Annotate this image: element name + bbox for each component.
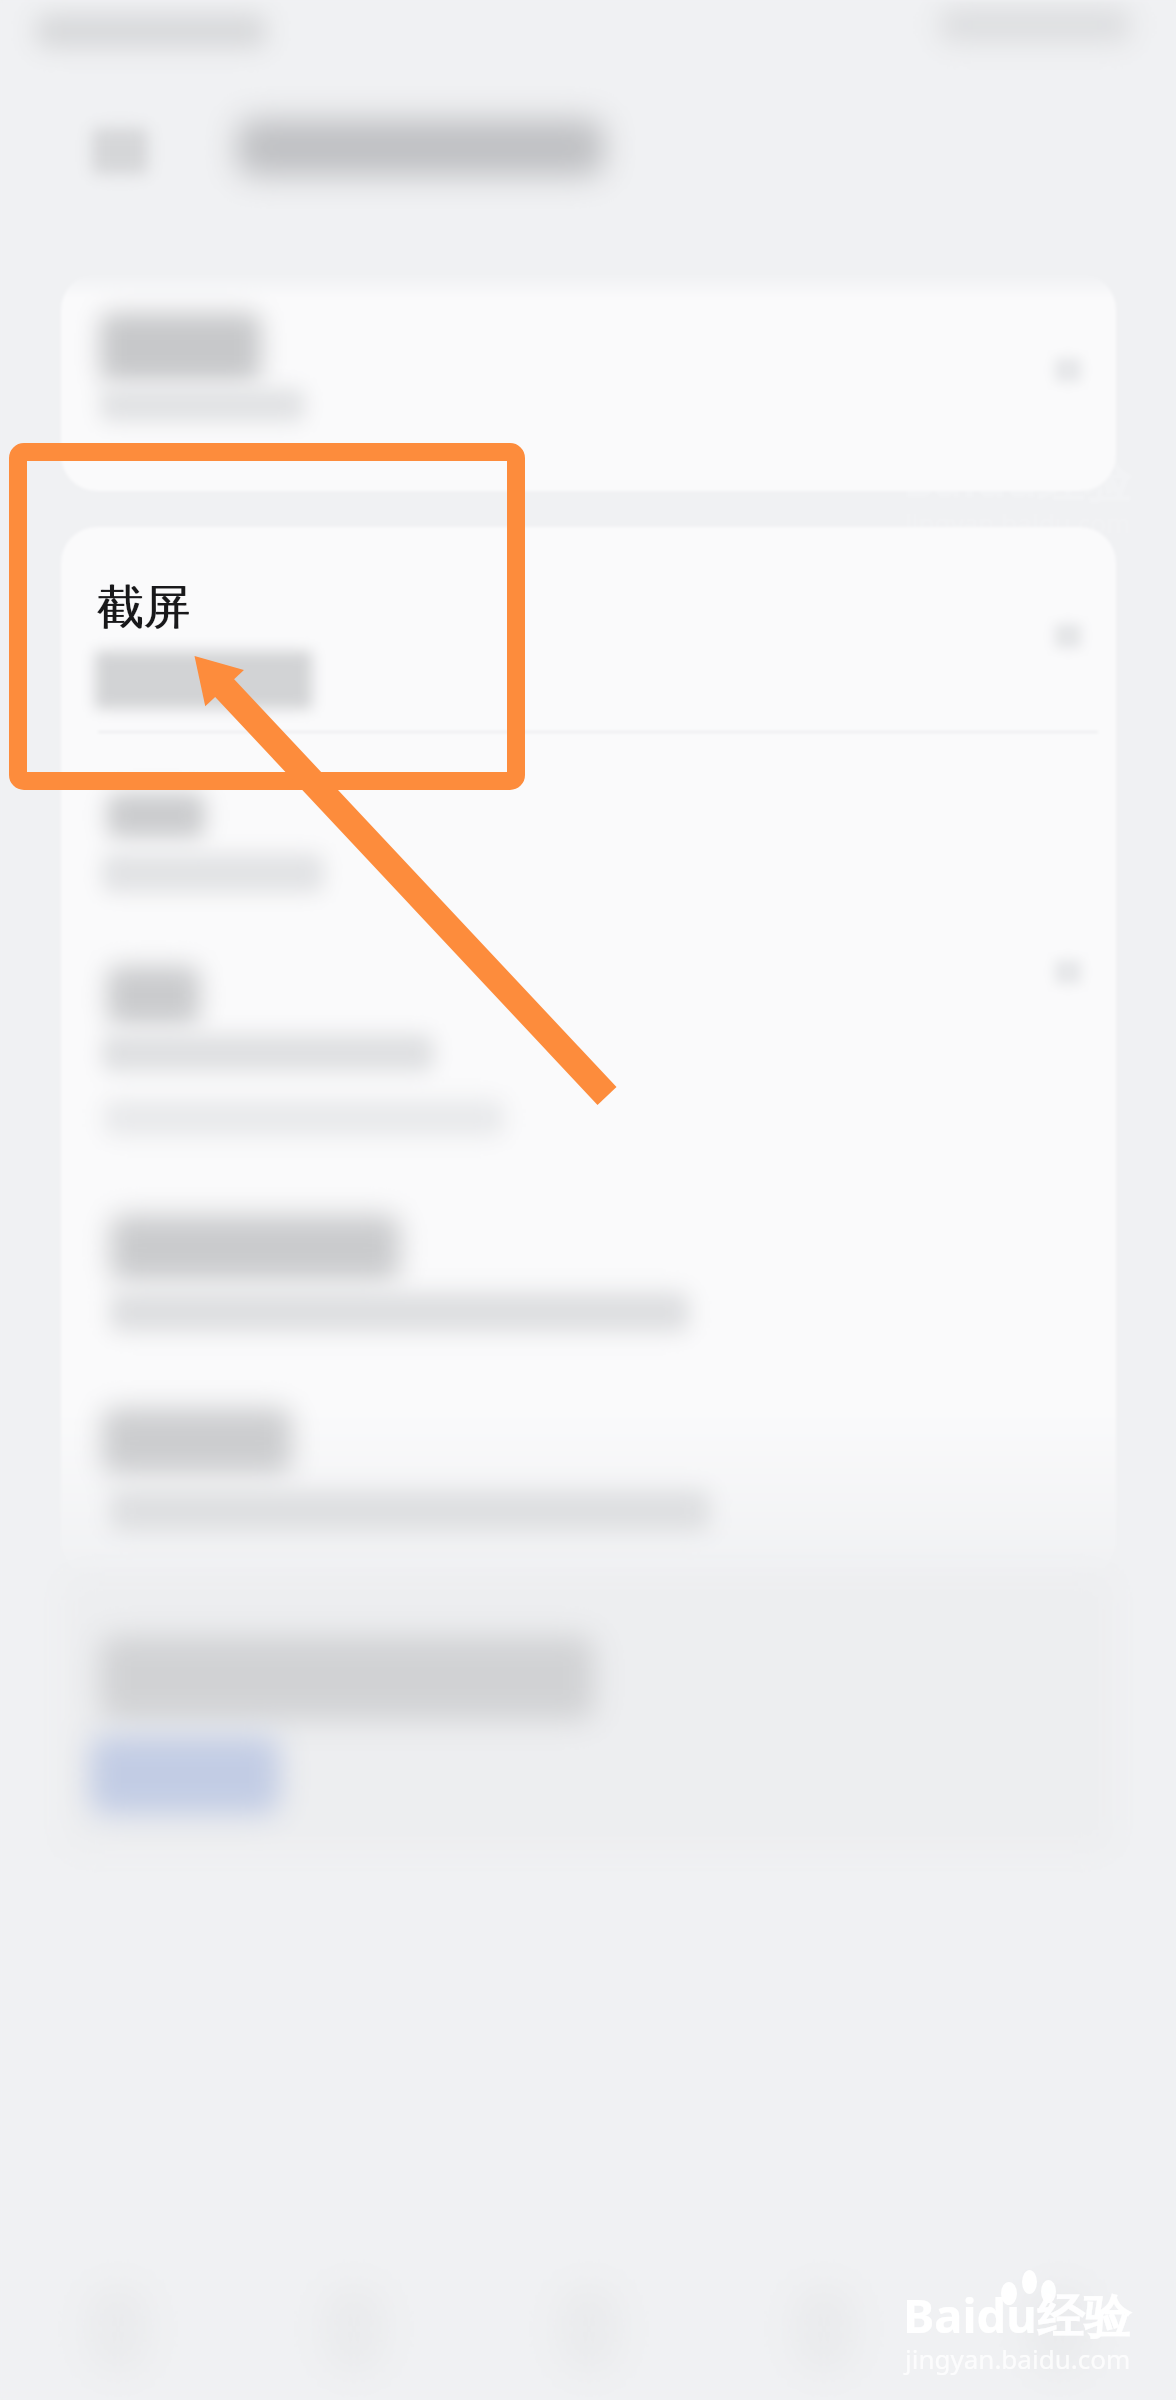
button[interactable]: Tab 5 <box>941 2250 1176 2400</box>
button[interactable]: Screenshot <box>61 527 1116 731</box>
button[interactable]: Accessibility settings <box>61 274 1116 491</box>
button[interactable]: Multi-window <box>61 1180 1116 1380</box>
button[interactable]: Screen recorder <box>61 750 1116 940</box>
staticText: 截屏 <box>97 578 191 637</box>
button[interactable]: 截屏 <box>96 578 190 637</box>
button[interactable]: Learn more <box>85 1730 290 1822</box>
staticText: Baidu经验 <box>903 447 1131 511</box>
staticText: Baidu经验 <box>903 2283 1131 2347</box>
staticText: 截屏 <box>96 578 190 637</box>
button[interactable]: Cast screen <box>61 940 1116 1140</box>
staticText: jingyan.baidu.com <box>905 2341 1131 2376</box>
staticText: jingyan.baidu.com <box>905 505 1131 540</box>
button[interactable]: Floating navigation ball <box>61 1380 1116 1570</box>
button[interactable]: Back <box>60 104 170 200</box>
